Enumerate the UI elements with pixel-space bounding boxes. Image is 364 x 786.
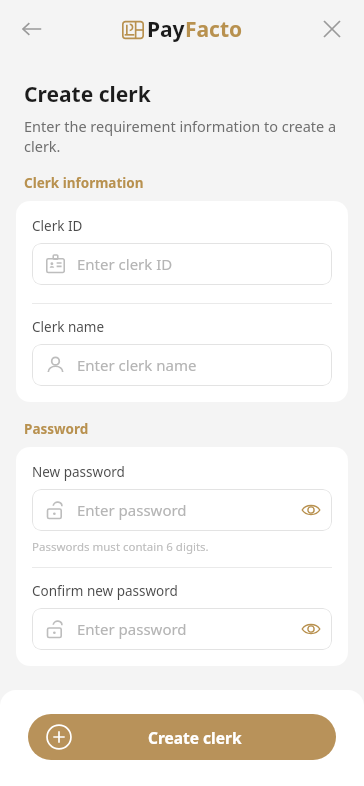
staticText: Enter clerk ID	[77, 254, 173, 274]
staticText: Enter password	[77, 500, 187, 520]
staticText: Passwords must contain 6 digits.	[32, 539, 209, 555]
staticText: Confirm new password	[32, 582, 178, 600]
staticText: Pay	[147, 15, 185, 44]
staticText: Facto	[185, 15, 243, 44]
staticText: Clerk information	[24, 174, 144, 192]
staticText: New password	[32, 463, 125, 481]
button[interactable]: Back	[10, 7, 54, 51]
button[interactable]: Enter password	[32, 608, 332, 650]
button[interactable]: Enter clerk ID	[32, 243, 332, 285]
staticText: Enter the requirement information to cre…	[24, 116, 340, 156]
staticText: Create clerk	[148, 727, 242, 748]
staticText: Password	[24, 420, 89, 438]
staticText: Create clerk	[24, 80, 151, 109]
button[interactable]: Show password	[293, 611, 329, 647]
button[interactable]: Close	[310, 7, 354, 51]
button[interactable]: Enter clerk name	[32, 344, 332, 386]
button[interactable]: Enter password	[32, 489, 332, 531]
staticText: Clerk ID	[32, 217, 83, 235]
staticText: Enter password	[77, 619, 187, 639]
staticText: Clerk name	[32, 318, 105, 336]
staticText: Enter clerk name	[77, 355, 197, 375]
button[interactable]: Show password	[293, 492, 329, 528]
button[interactable]: Create clerk	[28, 714, 336, 760]
